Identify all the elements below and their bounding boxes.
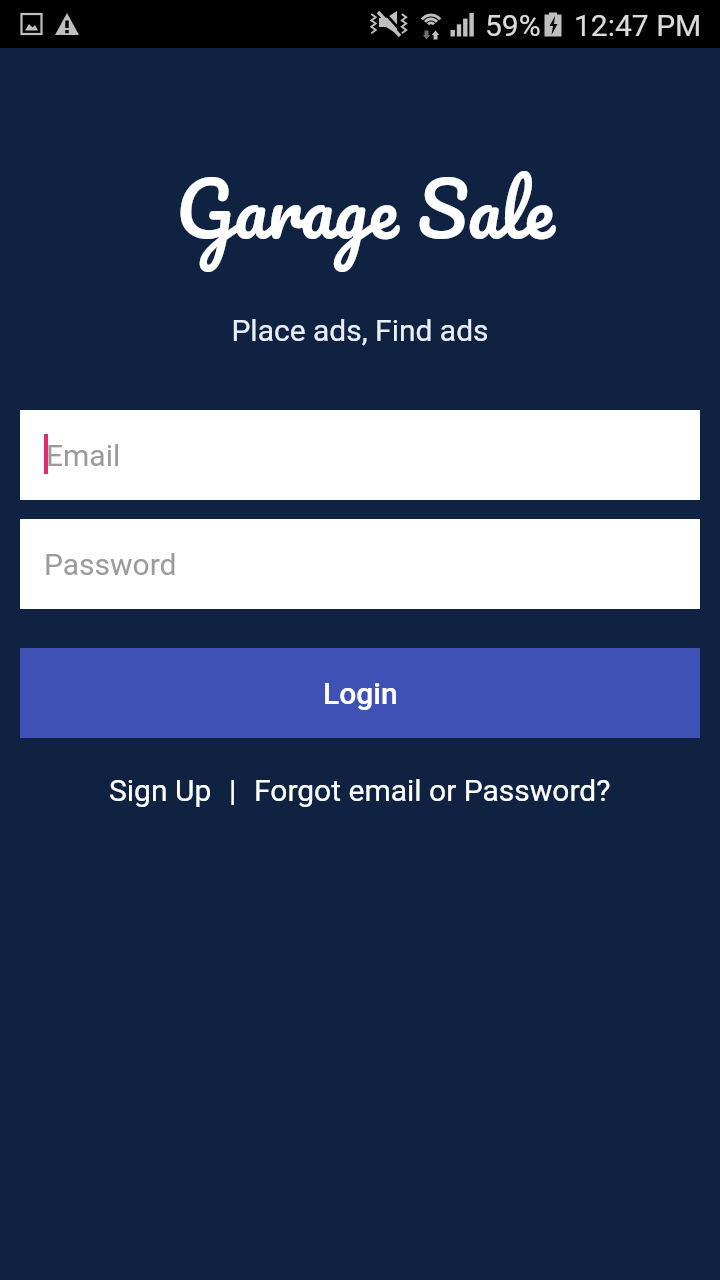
staticText: Place ads, Find ads bbox=[0, 313, 720, 348]
staticText: 12:47 PM bbox=[574, 8, 702, 43]
staticText: Password bbox=[44, 547, 177, 582]
button[interactable]: Login bbox=[20, 648, 700, 738]
staticText: Email bbox=[46, 438, 121, 473]
staticText: Sign Up bbox=[109, 773, 212, 808]
button[interactable]: Password bbox=[20, 519, 700, 609]
staticText: Garage Sale bbox=[5, 145, 720, 271]
staticText: Forgot email or Password? bbox=[254, 773, 611, 808]
staticText: | bbox=[229, 773, 237, 808]
button[interactable]: Sign Up bbox=[109, 773, 212, 808]
staticText: Login bbox=[323, 676, 398, 711]
button[interactable]: Forgot email or Password? bbox=[254, 773, 611, 808]
staticText: 59% bbox=[485, 8, 541, 43]
button[interactable]: Email bbox=[20, 410, 700, 500]
